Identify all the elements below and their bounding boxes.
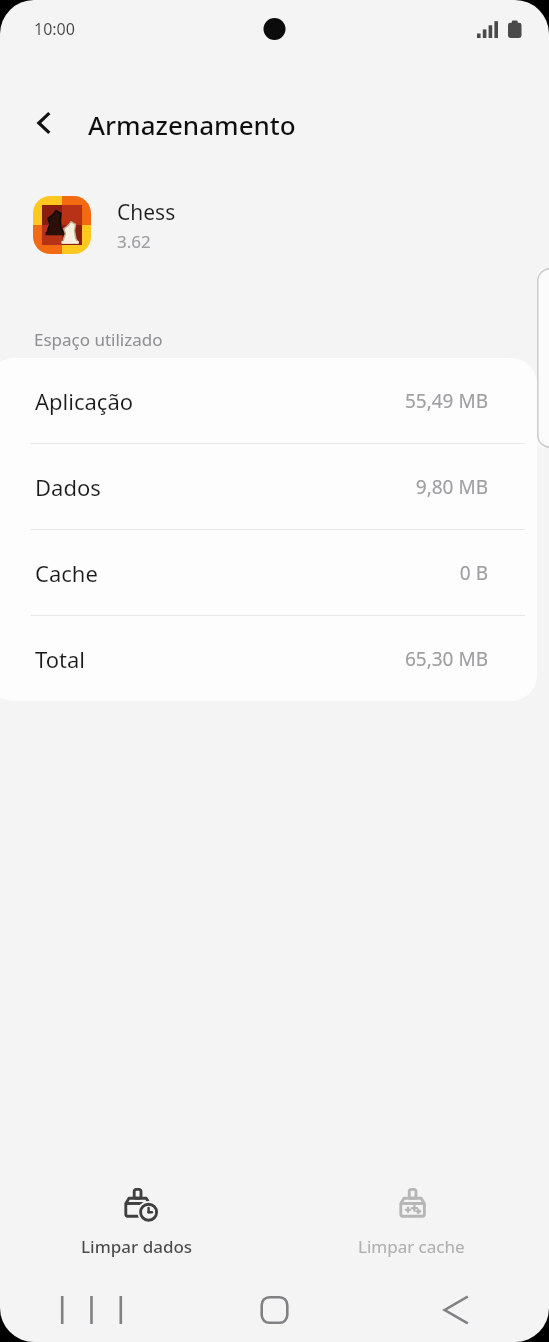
button[interactable]: Cache (0, 530, 537, 615)
button[interactable]: Recents (0, 1278, 183, 1342)
button[interactable]: Limpar cache (274, 1168, 549, 1258)
staticText: Espaço utilizado (34, 328, 163, 351)
button[interactable]: Dados (0, 444, 537, 529)
staticText: 10:00 (34, 18, 75, 40)
staticText: 65,30 MB (93, 646, 488, 672)
staticText: Aplicação (35, 386, 134, 416)
staticText: Limpar dados (81, 1235, 193, 1258)
staticText: Dados (35, 472, 101, 502)
button[interactable]: Home (183, 1278, 366, 1342)
button[interactable]: Chess (0, 182, 549, 268)
button[interactable]: Back (366, 1278, 549, 1342)
button[interactable]: Back (20, 99, 68, 147)
staticText: 0 B (106, 560, 488, 586)
staticText: 9,80 MB (109, 474, 488, 500)
staticText: Armazenamento (88, 107, 296, 142)
staticText: 55,49 MB (142, 388, 488, 414)
staticText: 3.62 (117, 230, 151, 253)
staticText: Cache (35, 558, 98, 588)
staticText: Total (35, 644, 85, 674)
staticText: Limpar cache (358, 1235, 465, 1258)
button[interactable]: Total (0, 616, 537, 701)
staticText: Chess (117, 198, 176, 227)
button[interactable]: Limpar dados (0, 1168, 274, 1258)
button[interactable]: Aplicação (0, 358, 537, 443)
